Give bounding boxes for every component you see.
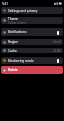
button[interactable]: Settings and privacy [1, 7, 63, 14]
staticText: Follow system [8, 21, 26, 24]
button[interactable]: Toggle [55, 58, 61, 63]
button[interactable]: Theme [1, 17, 63, 24]
button[interactable]: Delete [1, 66, 63, 74]
staticText: Region [8, 40, 19, 44]
staticText: Cache [8, 49, 17, 53]
staticText: Monitoring mode [8, 59, 34, 63]
staticText: Theme [8, 17, 19, 21]
button[interactable]: Region [1, 39, 63, 45]
staticText: 24 MB [53, 49, 61, 53]
staticText: Delete [8, 68, 18, 72]
staticText: Notifications [8, 30, 27, 34]
button[interactable]: Toggle [55, 30, 61, 35]
button[interactable]: Cache [1, 48, 63, 53]
staticText: Global [53, 40, 61, 44]
staticText: 9:41 [2, 2, 8, 6]
button[interactable]: Notifications [1, 28, 63, 36]
staticText: Settings and privacy [8, 9, 38, 13]
button[interactable]: Monitoring mode [1, 57, 63, 64]
